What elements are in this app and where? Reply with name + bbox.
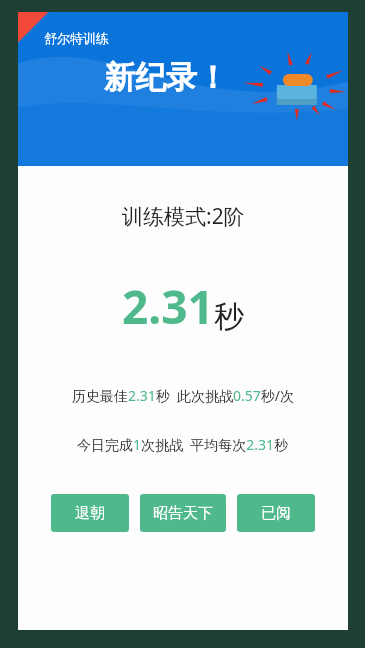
- staticText: 历史最佳2.31秒 此次挑战0.57秒/次: [72, 386, 295, 405]
- button[interactable]: 昭告天下: [140, 494, 226, 532]
- staticText: 新纪录！: [104, 58, 228, 97]
- staticText: 昭告天下: [153, 504, 213, 523]
- staticText: 2.31: [122, 275, 214, 338]
- staticText: 秒: [214, 298, 244, 336]
- staticText: 今日完成1次挑战 平均每次2.31秒: [77, 435, 289, 454]
- staticText: 训练模式:2阶: [122, 202, 245, 231]
- staticText: 舒尔特训练: [44, 30, 109, 46]
- button[interactable]: 退朝: [51, 494, 129, 532]
- staticText: 已阅: [261, 504, 291, 523]
- staticText: 退朝: [75, 504, 105, 523]
- button[interactable]: 已阅: [237, 494, 315, 532]
